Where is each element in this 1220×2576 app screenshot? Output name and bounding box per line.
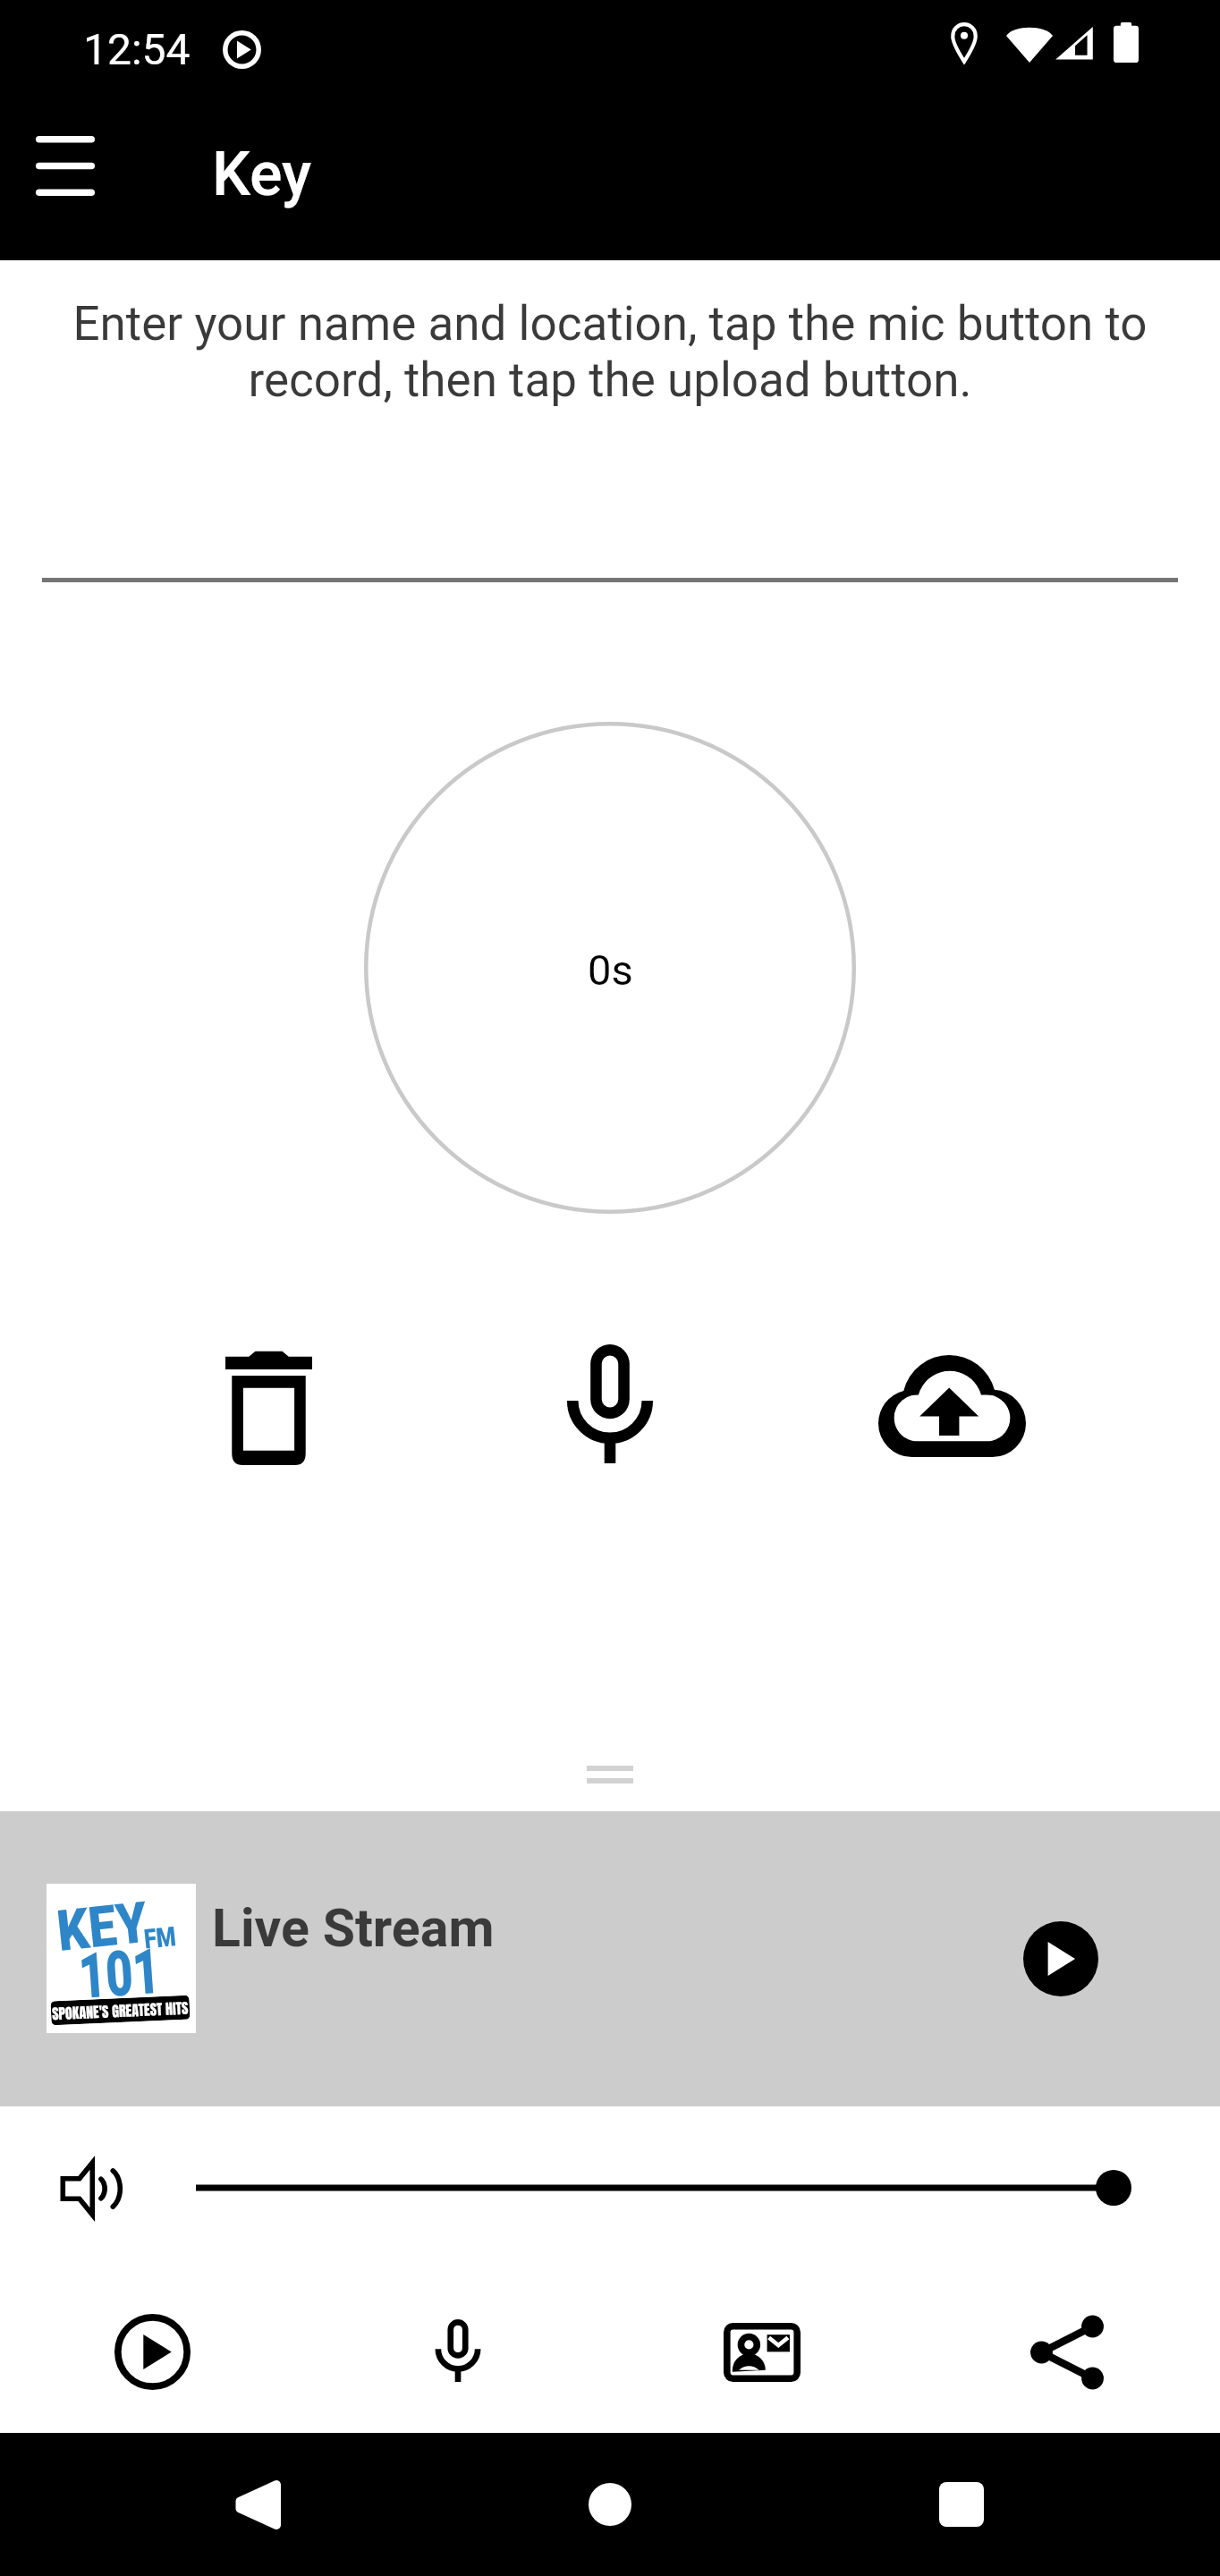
button[interactable]: Play live stream	[1023, 1921, 1098, 1996]
staticText: Enter your name and location, tap the mi…	[63, 296, 1157, 408]
button[interactable]: Contact us	[724, 2323, 801, 2382]
button[interactable]: Back	[192, 2451, 318, 2558]
button[interactable]: Microphone	[435, 2319, 481, 2382]
staticText: KEY	[54, 1889, 151, 1964]
button[interactable]: Recent apps	[899, 2451, 1024, 2558]
button[interactable]: Delete recording	[225, 1349, 312, 1465]
button[interactable]: Volume	[196, 2152, 1131, 2224]
button[interactable]: Play	[114, 2314, 191, 2390]
staticText: 101	[76, 1935, 162, 2008]
staticText: Key	[212, 139, 312, 210]
button[interactable]: Upload recording	[878, 1355, 1026, 1457]
staticText: 0s	[588, 945, 633, 995]
button[interactable]: Record with microphone	[566, 1344, 654, 1463]
button[interactable]: Share	[1026, 2311, 1108, 2394]
button[interactable]: Open navigation menu	[6, 106, 124, 225]
staticText: SPOKANE'S GREATEST HITS	[52, 1997, 189, 2024]
staticText: 12:54	[83, 24, 191, 74]
button[interactable]: Name and location text field	[42, 483, 1178, 582]
button[interactable]: Home	[547, 2451, 673, 2558]
staticText: Live Stream	[212, 1897, 495, 1959]
staticText: FM	[142, 1921, 178, 1955]
